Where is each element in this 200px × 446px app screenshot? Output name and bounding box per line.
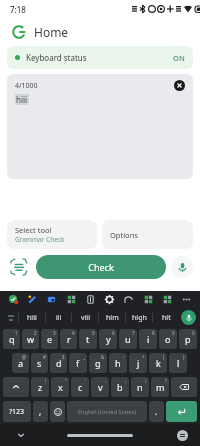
staticText: l [177,357,180,369]
button[interactable]: Enter [166,401,197,422]
button[interactable]: ?123 [3,401,31,422]
staticText: s [37,357,42,369]
button[interactable]: c [71,377,89,397]
button[interactable]: Keyboard tool 10 [179,292,194,307]
button[interactable]: s [31,353,48,373]
staticText: 0 [192,330,195,336]
button[interactable]: d [50,353,67,373]
staticText: Grammar Check [15,235,65,244]
button[interactable]: Keyboard tool 8 [141,292,156,307]
button[interactable]: Hide keyboard [14,428,28,442]
button[interactable]: , [33,401,48,422]
button[interactable]: q [3,329,20,349]
staticText: z [38,381,43,393]
button[interactable]: Keyboard tool 5 [83,292,98,307]
button[interactable]: Options [102,220,193,249]
button[interactable]: hit [153,308,179,327]
button[interactable]: Keyboard tool 4 [64,292,79,307]
staticText: 5 [92,330,95,336]
button[interactable]: a [12,353,29,373]
staticText: high [132,313,147,323]
button[interactable]: m [151,377,169,397]
button[interactable]: g [89,353,107,373]
button[interactable]: n [131,377,149,397]
button[interactable]: b [111,377,129,397]
button[interactable]: Shift [3,377,29,397]
staticText: + [142,354,145,360]
staticText: / [145,378,147,384]
button[interactable]: Keyboard tool 3 [44,292,59,307]
staticText: 4/1000 [15,81,38,91]
button[interactable]: Keyboard tool 9 [160,292,175,307]
staticText: Home [34,24,69,40]
button[interactable]: f [69,353,87,373]
button[interactable]: . [149,401,164,422]
button[interactable]: Emoji [50,401,65,422]
button[interactable]: Keyboard tool 7 [121,292,136,307]
staticText: c [78,381,83,393]
staticText: j [137,357,140,369]
button[interactable]: e [41,329,58,349]
staticText: @ [22,354,27,360]
button[interactable]: Keyboard tool 6 [102,292,117,307]
staticText: n [137,381,143,393]
button[interactable]: high [126,308,152,327]
staticText: viii [81,313,90,323]
button[interactable]: Keyboard tool 1 [6,292,21,307]
staticText: ( [163,354,165,360]
button[interactable]: English (United States) [67,401,147,422]
button[interactable]: hiii [19,308,45,327]
staticText: 7 [132,330,135,336]
button[interactable]: r [60,329,77,349]
button[interactable]: h [109,353,127,373]
staticText: a [18,357,24,369]
staticText: p [185,333,191,345]
button[interactable]: him [99,308,125,327]
staticText: ON [173,53,185,63]
staticText: hiii [27,313,37,323]
staticText: him [106,313,119,323]
staticText: 2 [34,330,37,336]
staticText: _ [83,354,85,360]
button[interactable]: Voice input [171,256,193,278]
staticText: ; [125,378,127,384]
staticText: ! [45,378,47,384]
button[interactable]: x [51,377,69,397]
staticText: 7:18 [10,4,26,15]
button[interactable]: j [129,353,147,373]
button[interactable]: p [179,329,197,349]
button[interactable]: t [79,329,97,349]
button[interactable]: Expand suggestions [4,308,18,327]
button[interactable]: z [31,377,49,397]
staticText: - [123,354,125,360]
staticText: Check [88,261,114,273]
button[interactable]: 4/1000 [7,74,193,179]
button[interactable]: Keyboard tool 2 [25,292,40,307]
button[interactable]: Clear text [174,80,185,91]
staticText: o [165,333,171,345]
staticText: 3 [53,330,56,336]
button[interactable]: w [22,329,39,349]
button[interactable]: Keyboard status [7,46,193,69]
button[interactable]: Select tool [7,220,97,249]
staticText: 4 [72,330,75,336]
staticText: 9 [172,330,175,336]
button[interactable]: o [159,329,177,349]
staticText: ' [85,378,87,384]
button[interactable]: k [149,353,167,373]
button[interactable]: y [99,329,117,349]
button[interactable]: u [119,329,137,349]
button[interactable]: Backspace [171,377,197,397]
button[interactable]: Switch keyboard [177,430,188,441]
button[interactable]: i [139,329,157,349]
button[interactable]: l [169,353,187,373]
button[interactable]: Scan text [7,255,31,279]
button[interactable]: viii [72,308,98,327]
staticText: " [65,378,67,384]
button[interactable]: iii [46,308,71,327]
staticText: # [43,354,46,360]
button[interactable]: Voice typing [181,310,196,325]
staticText: u [125,333,131,345]
button[interactable]: Check [36,255,166,279]
button[interactable]: v [91,377,109,397]
